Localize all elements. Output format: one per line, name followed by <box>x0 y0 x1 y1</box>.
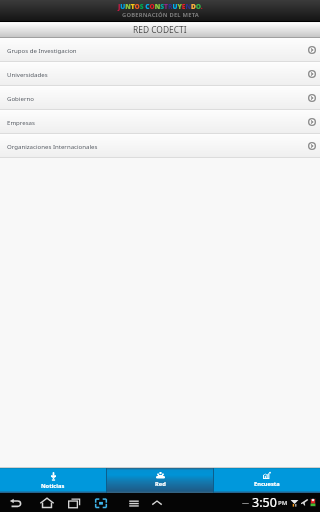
button[interactable]: Screenshot <box>92 493 110 512</box>
button[interactable]: Gobierno <box>0 86 320 109</box>
staticText: Grupos de Investigacion <box>7 46 77 54</box>
button[interactable]: Empresas <box>0 110 320 133</box>
button[interactable]: Red <box>107 468 213 493</box>
staticText: RED CODECTI <box>133 24 187 35</box>
staticText: PM <box>278 499 288 507</box>
staticText: — <box>242 498 249 508</box>
staticText: 3:50 <box>252 494 277 511</box>
staticText: Red <box>155 480 166 488</box>
staticText: Organizaciones Internacionales <box>7 142 98 150</box>
button[interactable]: Expand <box>148 493 166 512</box>
staticText: Universidades <box>7 70 48 78</box>
button[interactable]: Encuesta <box>214 468 320 493</box>
button[interactable]: Recent apps <box>65 493 83 512</box>
button[interactable]: Back <box>7 493 25 512</box>
staticText: Encuesta <box>254 480 280 488</box>
staticText: JUNTOS CONSTRUYENDO. <box>118 2 203 11</box>
button[interactable]: Home <box>38 493 56 512</box>
button[interactable]: Menu <box>125 493 143 512</box>
button[interactable]: Noticias <box>0 468 106 493</box>
button[interactable]: Grupos de Investigacion <box>0 38 320 61</box>
button[interactable]: Organizaciones Internacionales <box>0 134 320 157</box>
staticText: Noticias <box>41 482 65 490</box>
staticText: GOBERNACIÓN DEL META <box>122 11 199 19</box>
staticText: Empresas <box>7 118 35 126</box>
staticText: Gobierno <box>7 94 34 102</box>
button[interactable]: Universidades <box>0 62 320 85</box>
